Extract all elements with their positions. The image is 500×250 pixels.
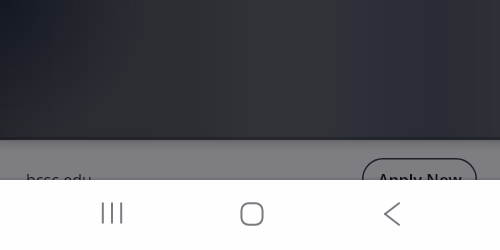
staticText: bcsc.edu: [26, 169, 92, 191]
button[interactable]: Back: [368, 190, 416, 238]
button[interactable]: Recent apps: [88, 189, 136, 237]
button[interactable]: Apply Now: [362, 158, 477, 200]
button[interactable]: Home: [228, 190, 276, 238]
staticText: Apply Now: [378, 169, 462, 191]
